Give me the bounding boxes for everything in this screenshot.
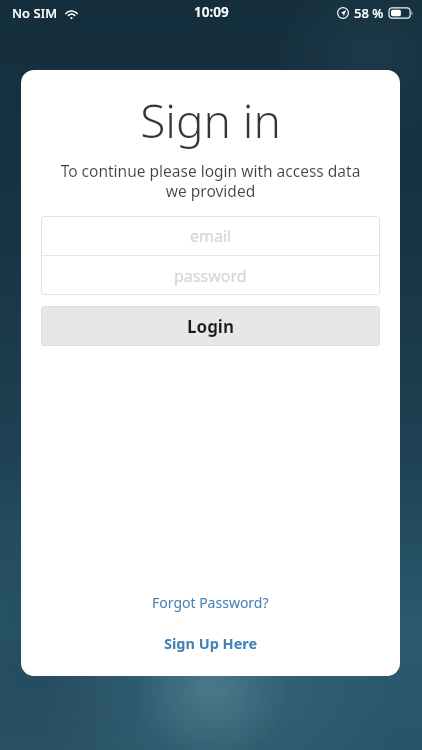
button[interactable]: email xyxy=(41,216,380,255)
staticText: password xyxy=(174,265,247,287)
staticText: 10:09 xyxy=(194,3,229,21)
staticText: Sign Up Here xyxy=(164,633,258,653)
button[interactable]: password xyxy=(41,256,380,295)
button[interactable]: Sign Up Here xyxy=(21,627,400,659)
staticText: Forgot Password? xyxy=(152,593,269,612)
button[interactable]: Forgot Password? xyxy=(21,587,400,618)
staticText: No SIM xyxy=(12,4,58,22)
staticText: Login xyxy=(187,315,235,338)
staticText: 58 % xyxy=(354,4,384,22)
button[interactable]: Login xyxy=(41,306,380,346)
staticText: email xyxy=(190,225,232,247)
staticText: Sign in xyxy=(140,89,281,152)
staticText: To continue please login with access dat… xyxy=(31,160,390,201)
